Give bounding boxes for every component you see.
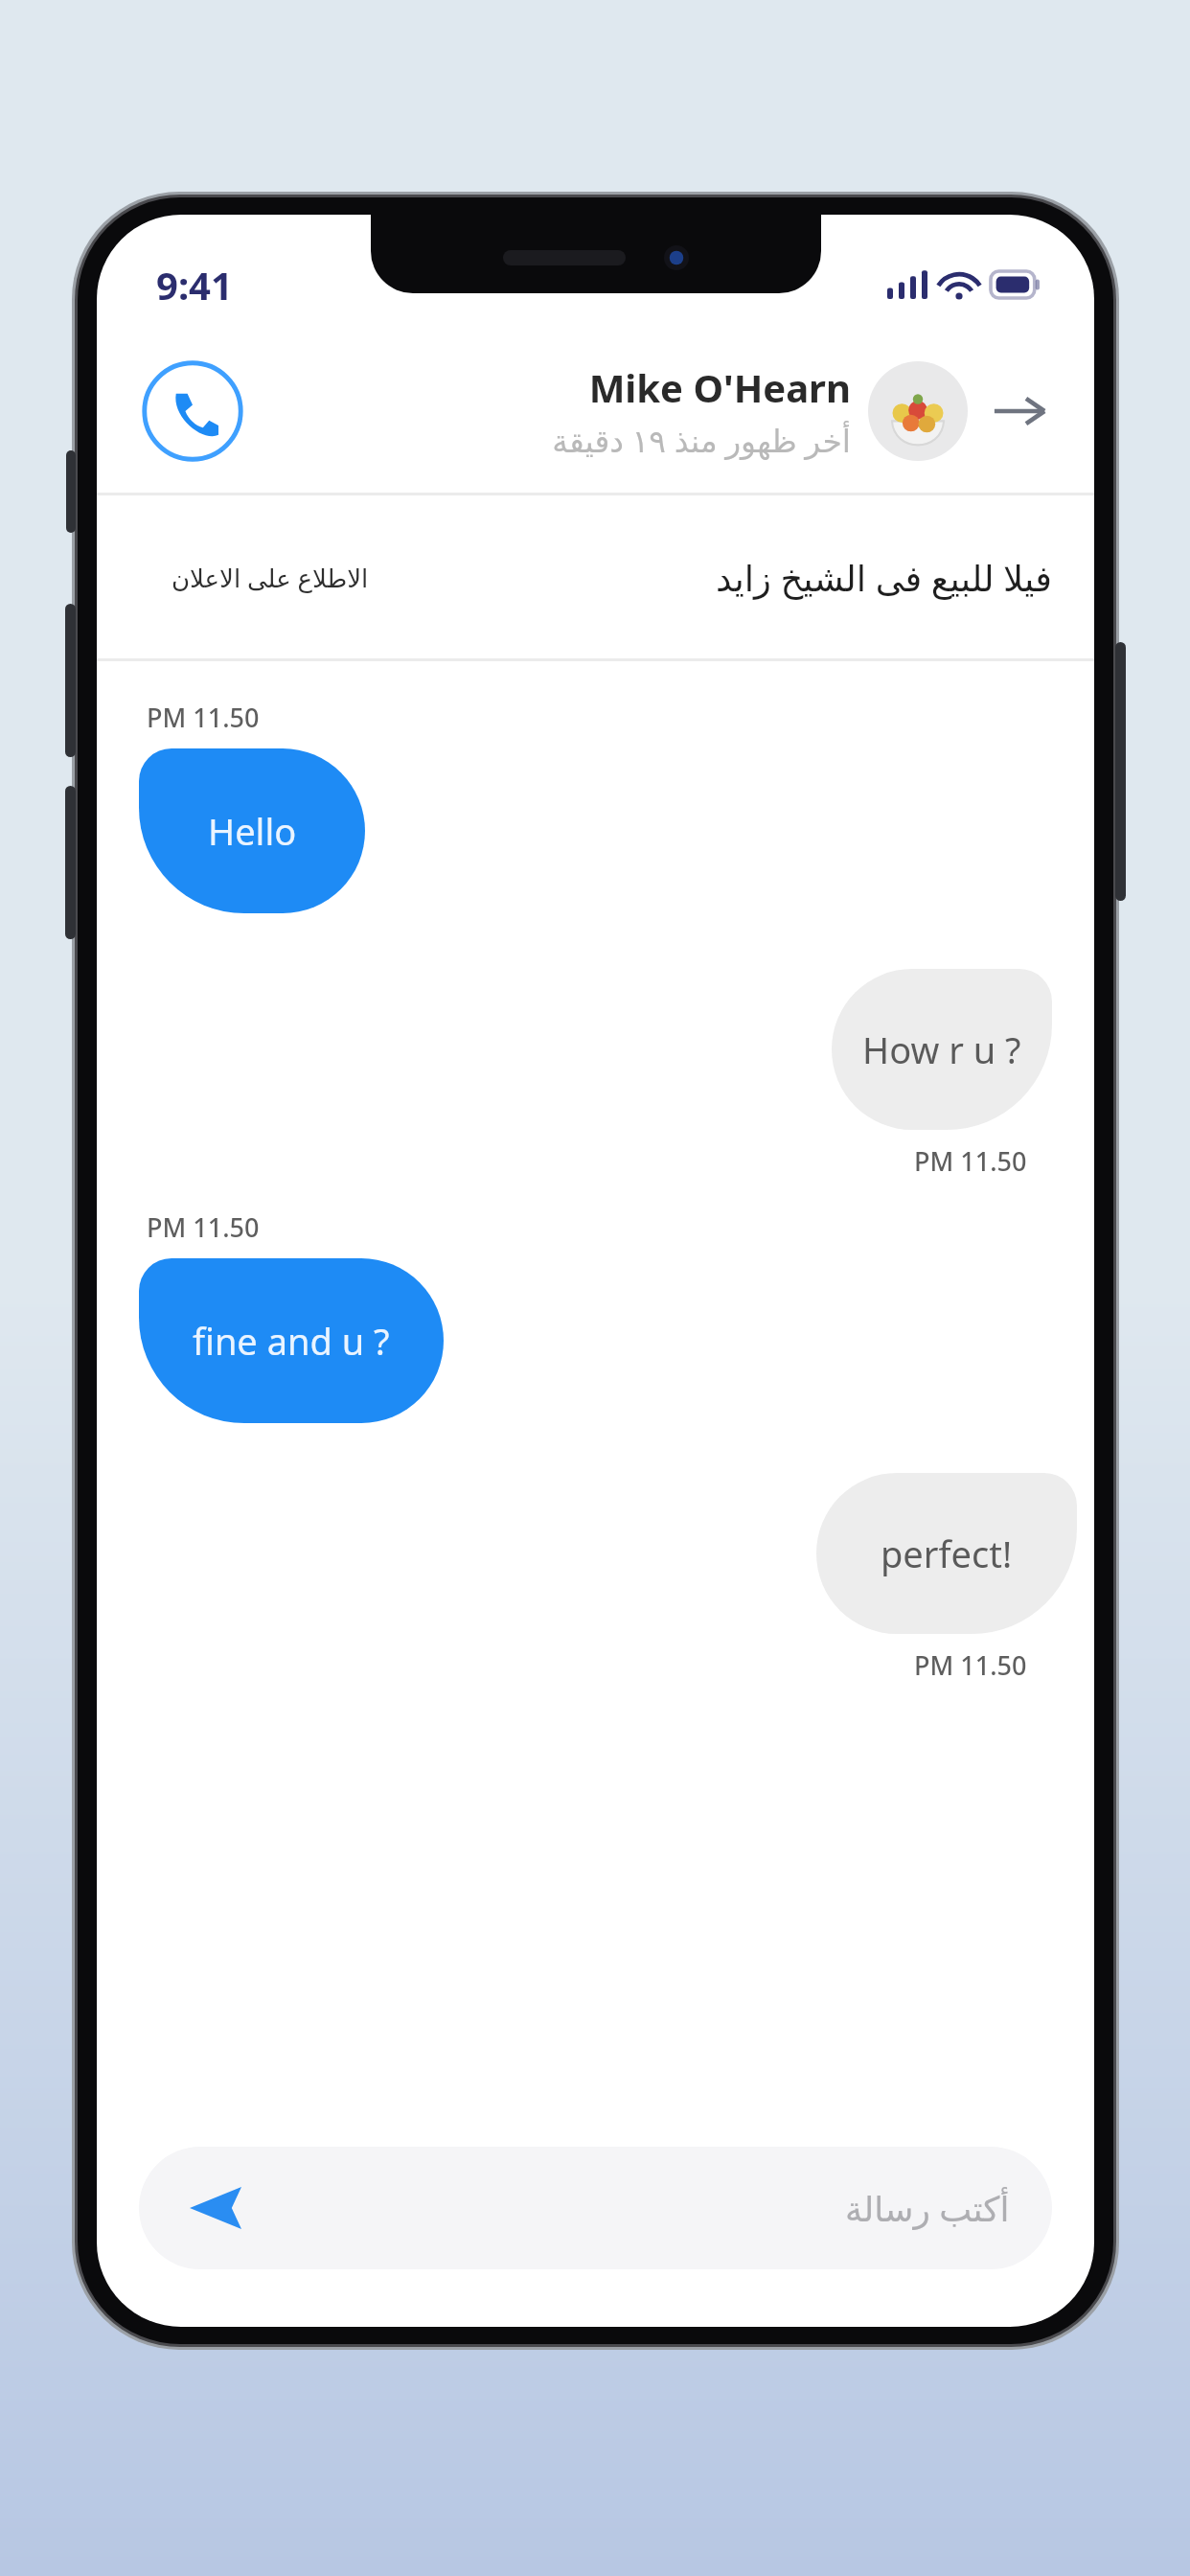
button[interactable]: Back bbox=[989, 380, 1050, 442]
button[interactable]: Hello bbox=[139, 748, 365, 913]
button[interactable]: Send bbox=[181, 2173, 250, 2242]
staticText: فيلا للبيع فى الشيخ زايد bbox=[716, 553, 1052, 601]
staticText: 9:41 bbox=[156, 259, 233, 310]
staticText: أخر ظهور منذ ١٩ دقيقة bbox=[552, 419, 851, 462]
staticText: perfect! bbox=[881, 1529, 1013, 1578]
staticText: PM 11.50 bbox=[914, 1647, 1027, 1683]
staticText: PM 11.50 bbox=[147, 700, 260, 735]
staticText: الاطلاع على الاعلان bbox=[172, 561, 369, 594]
staticText: Mike O'Hearn bbox=[588, 361, 851, 413]
staticText: How r u ? bbox=[862, 1024, 1021, 1074]
staticText: fine and u ? bbox=[193, 1316, 390, 1366]
button[interactable]: How r u ? bbox=[832, 969, 1052, 1130]
staticText: PM 11.50 bbox=[914, 1143, 1027, 1179]
button[interactable]: Call bbox=[141, 359, 244, 463]
button[interactable]: perfect! bbox=[816, 1473, 1077, 1634]
button[interactable]: الاطلاع على الاعلان bbox=[139, 540, 401, 615]
button[interactable]: fine and u ? bbox=[139, 1258, 444, 1423]
button[interactable]: Send bbox=[139, 2147, 1052, 2269]
staticText: Hello bbox=[208, 806, 297, 856]
staticText: أكتب رسالة bbox=[845, 2185, 1010, 2232]
button[interactable]: Mike O'Hearn bbox=[552, 361, 851, 462]
staticText: PM 11.50 bbox=[147, 1209, 260, 1245]
button[interactable]: Profile photo bbox=[868, 361, 968, 461]
